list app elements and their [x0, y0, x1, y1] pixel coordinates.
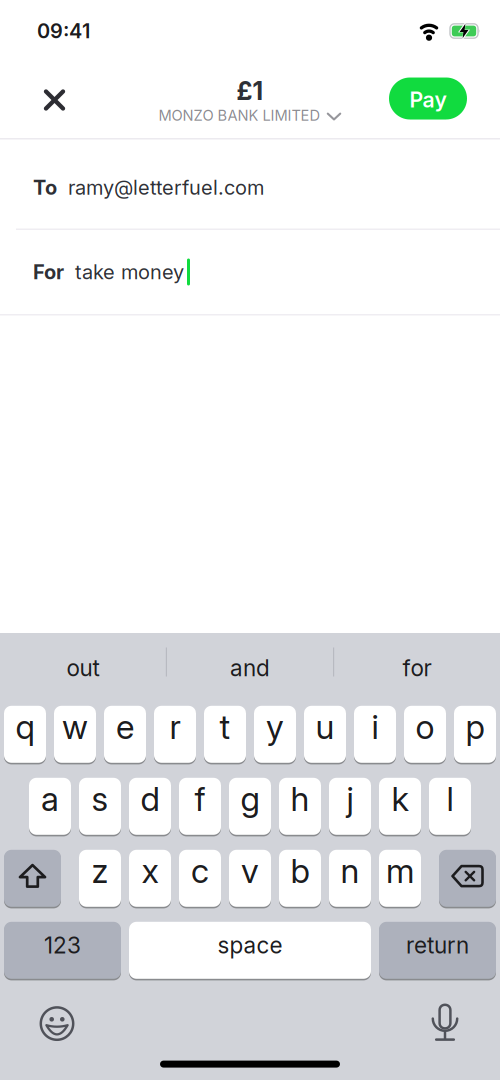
- staticText: for: [403, 655, 432, 681]
- staticText: and: [230, 655, 270, 681]
- button[interactable]: Close: [30, 73, 78, 124]
- button[interactable]: q: [4, 705, 46, 764]
- button[interactable]: return: [379, 921, 496, 980]
- button[interactable]: k: [379, 777, 421, 836]
- staticText: 09:41: [37, 19, 90, 43]
- button[interactable]: o: [404, 705, 446, 764]
- staticText: c: [191, 851, 209, 890]
- staticText: To: [33, 176, 57, 199]
- button[interactable]: Pay: [389, 77, 467, 119]
- staticText: v: [241, 851, 259, 890]
- button[interactable]: l: [429, 777, 471, 836]
- staticText: l: [446, 779, 453, 818]
- button[interactable]: For: [0, 230, 500, 314]
- button[interactable]: and: [167, 633, 333, 703]
- button[interactable]: u: [304, 705, 346, 764]
- button[interactable]: p: [454, 705, 496, 764]
- staticText: £1: [236, 76, 263, 106]
- staticText: take money: [75, 260, 184, 284]
- staticText: MONZO BANK LIMITED: [158, 107, 320, 124]
- staticText: return: [406, 932, 469, 959]
- button[interactable]: y: [254, 705, 296, 764]
- staticText: f: [194, 779, 205, 818]
- staticText: k: [391, 779, 408, 818]
- staticText: y: [266, 707, 284, 746]
- staticText: z: [91, 851, 108, 890]
- button[interactable]: for: [334, 633, 500, 703]
- staticText: out: [66, 655, 99, 681]
- staticText: e: [116, 707, 134, 746]
- staticText: w: [62, 707, 88, 746]
- button[interactable]: c: [179, 849, 221, 908]
- button[interactable]: d: [129, 777, 171, 836]
- button[interactable]: h: [279, 777, 321, 836]
- staticText: h: [290, 779, 309, 818]
- staticText: g: [240, 779, 259, 818]
- staticText: m: [386, 851, 414, 890]
- button[interactable]: m: [379, 849, 421, 908]
- staticText: t: [219, 707, 230, 746]
- staticText: q: [15, 707, 34, 746]
- button[interactable]: g: [229, 777, 271, 836]
- button[interactable]: out: [0, 633, 166, 703]
- staticText: 123: [44, 932, 81, 959]
- staticText: r: [169, 707, 180, 746]
- staticText: b: [290, 851, 309, 890]
- button[interactable]: a: [29, 777, 71, 836]
- button[interactable]: z: [79, 849, 121, 908]
- staticText: j: [346, 779, 353, 818]
- button[interactable]: To: [0, 139, 500, 228]
- button[interactable]: w: [54, 705, 96, 764]
- staticText: d: [140, 779, 159, 818]
- staticText: p: [465, 707, 484, 746]
- button[interactable]: e: [104, 705, 146, 764]
- button[interactable]: Delete: [439, 849, 496, 908]
- button[interactable]: j: [329, 777, 371, 836]
- staticText: Pay: [409, 87, 446, 112]
- staticText: s: [91, 779, 108, 818]
- button[interactable]: s: [79, 777, 121, 836]
- staticText: x: [141, 851, 158, 890]
- staticText: o: [415, 707, 434, 746]
- button[interactable]: Dictate: [430, 1003, 500, 1045]
- button[interactable]: 123: [4, 921, 121, 980]
- button[interactable]: r: [154, 705, 196, 764]
- staticText: a: [41, 779, 59, 818]
- button[interactable]: i: [354, 705, 396, 764]
- staticText: i: [371, 707, 378, 746]
- button[interactable]: Shift: [4, 849, 61, 908]
- staticText: space: [217, 932, 282, 959]
- staticText: ramy@letterfuel.com: [68, 176, 264, 199]
- staticText: n: [340, 851, 359, 890]
- staticText: For: [33, 260, 64, 284]
- button[interactable]: space: [129, 921, 371, 980]
- button[interactable]: f: [179, 777, 221, 836]
- button[interactable]: x: [129, 849, 171, 908]
- button[interactable]: v: [229, 849, 271, 908]
- button[interactable]: Emoji: [0, 1006, 75, 1042]
- button[interactable]: b: [279, 849, 321, 908]
- button[interactable]: n: [329, 849, 371, 908]
- staticText: u: [315, 707, 334, 746]
- button[interactable]: t: [204, 705, 246, 764]
